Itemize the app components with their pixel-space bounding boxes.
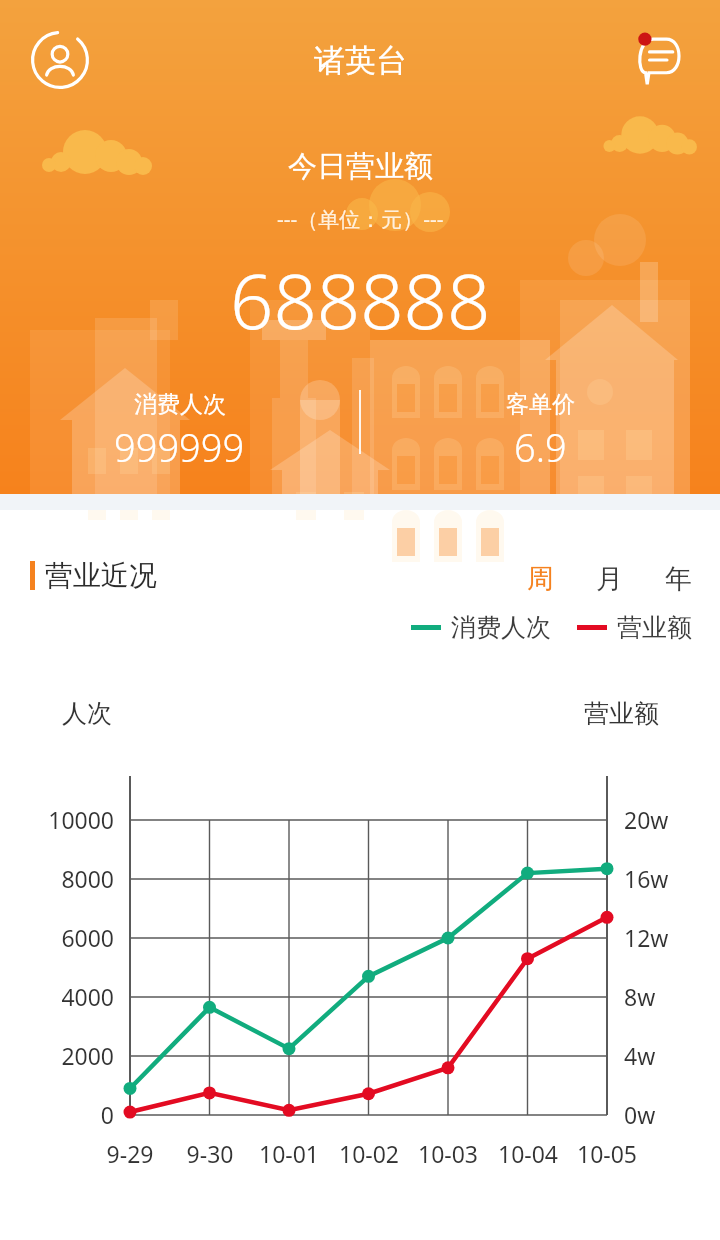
staticText: 8w [624, 981, 694, 1012]
staticText: 10-03 [400, 1138, 496, 1169]
staticText: 4000 [8, 981, 114, 1012]
button[interactable]: Messages [624, 24, 696, 96]
staticText: 10-01 [241, 1138, 337, 1169]
button[interactable]: 年 [659, 556, 698, 602]
button[interactable]: 周 [521, 556, 560, 602]
button[interactable]: 营业额 [577, 612, 692, 643]
staticText: 客单价 [506, 390, 575, 419]
staticText: 20w [624, 804, 694, 835]
staticText: 营业额 [617, 612, 692, 643]
staticText: 12w [624, 922, 694, 953]
button[interactable]: 月 [590, 556, 629, 602]
staticText: 诸英台 [314, 41, 407, 80]
staticText: 消费人次 [134, 390, 226, 419]
staticText: 10-05 [559, 1138, 655, 1169]
staticText: 周 [527, 562, 554, 596]
staticText: 10000 [8, 804, 114, 835]
staticText: 16w [624, 863, 694, 894]
staticText: 年 [665, 562, 692, 596]
staticText: 2000 [8, 1040, 114, 1071]
staticText: 人次 [62, 698, 112, 729]
staticText: 6000 [8, 922, 114, 953]
staticText: 营业近况 [45, 558, 157, 593]
staticText: ---（单位：元）--- [277, 205, 444, 234]
button[interactable]: Profile [24, 24, 96, 96]
staticText: 4w [624, 1040, 694, 1071]
staticText: 9-30 [162, 1138, 258, 1169]
staticText: 8000 [8, 863, 114, 894]
staticText: 6.9 [514, 421, 567, 473]
staticText: 营业额 [584, 698, 659, 729]
staticText: 10-04 [480, 1138, 576, 1169]
button[interactable]: 消费人次 [411, 612, 551, 643]
staticText: 9-29 [82, 1138, 178, 1169]
staticText: 688888 [230, 248, 491, 352]
staticText: 月 [596, 562, 623, 596]
staticText: 消费人次 [451, 612, 551, 643]
staticText: 999999 [114, 421, 245, 473]
staticText: 0w [624, 1099, 694, 1130]
staticText: 今日营业额 [288, 148, 433, 185]
staticText: 0 [8, 1099, 114, 1130]
staticText: 10-02 [321, 1138, 417, 1169]
